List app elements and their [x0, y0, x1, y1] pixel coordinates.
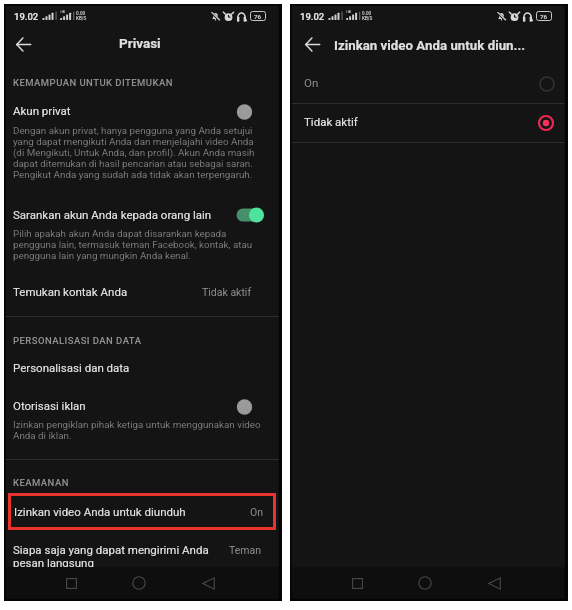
staticText: Izinkan pengiklan pihak ketiga untuk men…	[13, 419, 265, 441]
button[interactable]	[4, 100, 282, 124]
staticText: KB/S	[76, 16, 87, 21]
staticText: 0.00	[76, 11, 86, 16]
staticText: Dengan akun privat, hanya pengguna yang …	[13, 125, 265, 180]
button[interactable]	[290, 108, 568, 142]
button[interactable]: Back	[194, 569, 222, 597]
button[interactable]: Home	[411, 569, 439, 597]
staticText: KEMAMPUAN UNTUK DITEMUKAN	[13, 77, 173, 88]
staticText: Temukan kontak Anda	[13, 285, 128, 298]
staticText: KB/S	[362, 16, 373, 21]
staticText: Siapa saja yang dapat mengirimi Anda pes…	[13, 543, 219, 569]
staticText: On	[250, 506, 264, 518]
staticText: 76	[254, 13, 262, 20]
button[interactable]	[4, 281, 282, 313]
staticText: Privasi	[119, 35, 161, 51]
button[interactable]: Back	[480, 569, 508, 597]
staticText: 76	[540, 13, 548, 20]
staticText: Izinkan video Anda untuk diunduh	[14, 505, 186, 518]
staticText: Akun privat	[13, 104, 71, 117]
button[interactable]: Back	[298, 30, 326, 58]
button[interactable]	[4, 396, 282, 420]
button[interactable]: Recents	[57, 569, 85, 597]
button[interactable]: Toggle	[233, 101, 267, 123]
button[interactable]	[4, 538, 282, 572]
button[interactable]: Back	[9, 30, 37, 58]
button[interactable]	[4, 356, 282, 382]
button[interactable]	[290, 69, 568, 103]
staticText: Tidak aktif	[304, 115, 358, 128]
staticText: KEAMANAN	[13, 477, 69, 488]
button[interactable]: Recents	[343, 569, 371, 597]
staticText: Teman	[229, 544, 262, 556]
staticText: Pilih apakah akun Anda dapat disarankan …	[13, 228, 265, 261]
staticText: Personalisasi dan data	[13, 361, 130, 374]
button[interactable]: Toggle	[233, 204, 267, 226]
staticText: Otorisasi iklan	[13, 399, 86, 412]
staticText: 19.02	[14, 11, 39, 22]
staticText: Tidak aktif	[202, 286, 252, 298]
staticText: 0.00	[362, 11, 372, 16]
button[interactable]	[8, 493, 276, 530]
staticText: On	[304, 76, 319, 89]
button[interactable]	[4, 205, 282, 229]
staticText: 19.02	[300, 11, 325, 22]
staticText: Sarankan akun Anda kepada orang lain	[13, 208, 212, 221]
staticText: Izinkan video Anda untuk diun...	[334, 38, 526, 54]
button[interactable]: Toggle	[233, 396, 267, 418]
staticText: PERSONALISASI DAN DATA	[13, 335, 142, 346]
button[interactable]: Home	[125, 569, 153, 597]
